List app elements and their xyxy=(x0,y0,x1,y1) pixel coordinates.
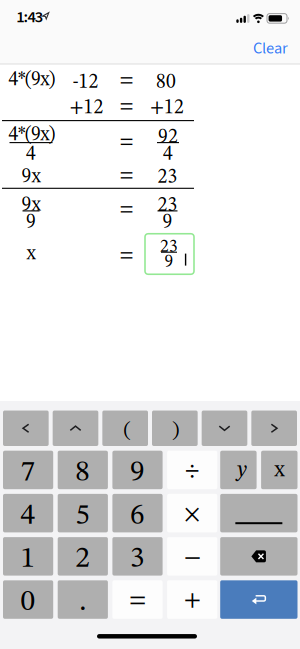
staticText: = xyxy=(119,245,133,265)
button[interactable]: x xyxy=(261,451,297,489)
staticText: 9 xyxy=(162,213,172,232)
staticText: 80 xyxy=(156,73,176,92)
staticText: . xyxy=(79,588,86,617)
staticText: 9 xyxy=(164,254,173,271)
button[interactable]: 7 xyxy=(3,451,53,489)
button[interactable]: Move right xyxy=(251,410,297,446)
staticText: 4*(9x) xyxy=(8,125,55,145)
button[interactable]: 3 xyxy=(112,537,163,576)
staticText: +12 xyxy=(150,98,184,118)
staticText: 3 xyxy=(130,544,145,574)
button[interactable]: y xyxy=(220,451,257,489)
button[interactable]: 6 xyxy=(112,494,163,532)
button[interactable]: Move down xyxy=(202,410,247,446)
staticText: = xyxy=(129,589,146,613)
staticText: 1 xyxy=(21,544,36,574)
staticText: = xyxy=(119,96,133,116)
button[interactable]: ) xyxy=(152,410,198,446)
staticText: 9 xyxy=(130,458,145,487)
staticText: 7 xyxy=(21,458,36,487)
staticText: x xyxy=(274,459,285,481)
staticText: 23 xyxy=(157,168,177,187)
button[interactable]: Move left xyxy=(3,410,49,446)
staticText: 9x xyxy=(21,167,40,187)
staticText: +12 xyxy=(69,98,103,118)
button[interactable]: 4 xyxy=(3,494,53,532)
staticText: Clear xyxy=(253,37,288,60)
button[interactable]: Fraction xyxy=(220,494,297,532)
button[interactable]: + xyxy=(167,580,217,619)
button[interactable]: 8 xyxy=(58,451,108,489)
staticText: 4 xyxy=(163,145,173,164)
staticText: = xyxy=(119,70,133,90)
staticText: ÷ xyxy=(185,459,199,483)
staticText: 9 xyxy=(26,213,36,232)
button[interactable]: 2 xyxy=(58,537,108,576)
button[interactable]: − xyxy=(167,537,217,576)
staticText: 4 xyxy=(21,501,36,531)
staticText: ( xyxy=(123,420,130,441)
button[interactable]: × xyxy=(167,494,217,532)
staticText: 2 xyxy=(75,544,90,574)
button[interactable]: Clear xyxy=(245,35,295,61)
staticText: -12 xyxy=(72,73,98,92)
staticText: × xyxy=(184,503,200,527)
button[interactable]: Return xyxy=(220,580,297,619)
staticText: − xyxy=(184,546,201,570)
button[interactable]: ( xyxy=(102,410,148,446)
staticText: 6 xyxy=(130,501,145,531)
staticText: = xyxy=(119,199,133,219)
staticText: x xyxy=(26,244,35,264)
staticText: 92 xyxy=(158,128,178,147)
staticText: ) xyxy=(172,420,179,441)
button[interactable]: . xyxy=(58,580,108,619)
button[interactable]: ÷ xyxy=(167,451,217,489)
staticText: 4*(9x) xyxy=(8,70,55,90)
button[interactable]: 1 xyxy=(3,537,53,576)
staticText: 5 xyxy=(75,501,90,531)
button[interactable]: 5 xyxy=(58,494,108,532)
staticText: 8 xyxy=(75,458,90,487)
staticText: + xyxy=(184,589,201,613)
button[interactable]: Delete xyxy=(220,537,297,576)
staticText: 1:43 xyxy=(16,5,43,29)
staticText: 0 xyxy=(21,588,36,617)
staticText: 23 xyxy=(157,196,177,216)
staticText: 4 xyxy=(26,145,36,164)
button[interactable]: 9 xyxy=(112,451,163,489)
staticText: 9x xyxy=(21,195,40,215)
staticText: = xyxy=(119,132,133,151)
button[interactable]: = xyxy=(112,580,163,619)
button[interactable]: Move up xyxy=(53,410,98,446)
staticText: 23 xyxy=(160,239,178,256)
button[interactable]: 0 xyxy=(3,580,53,619)
staticText: = xyxy=(119,165,133,185)
staticText: y xyxy=(237,459,247,481)
